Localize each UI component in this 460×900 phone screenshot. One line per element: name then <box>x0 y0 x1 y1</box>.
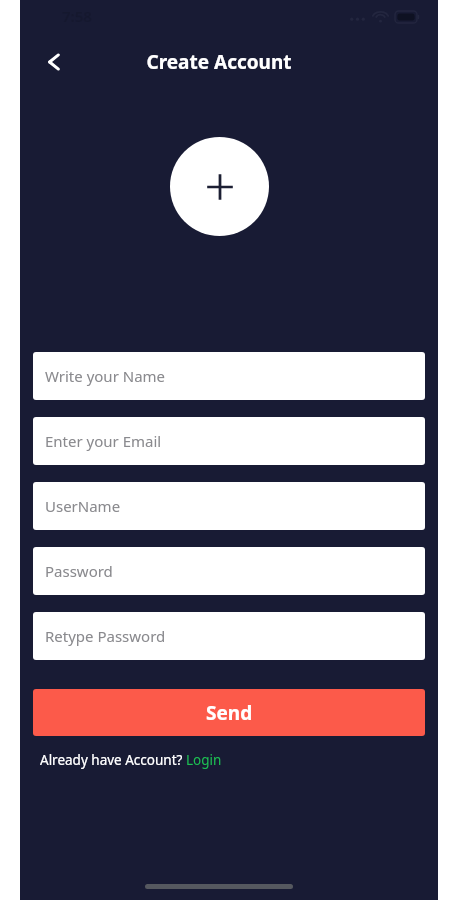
staticText: Password <box>45 561 113 581</box>
staticText: Login <box>186 751 222 769</box>
button[interactable]: Send <box>33 689 425 736</box>
button[interactable]: Password <box>33 547 425 595</box>
button[interactable]: Login <box>186 751 222 769</box>
staticText: Send <box>206 700 253 726</box>
staticText: Already have Account? <box>40 751 186 769</box>
staticText: Write your Name <box>45 366 166 386</box>
button[interactable]: Back <box>32 40 76 84</box>
staticText: UserName <box>45 496 121 516</box>
button[interactable]: Enter your Email <box>33 417 425 465</box>
button[interactable]: Add profile photo <box>170 137 269 236</box>
button[interactable]: Write your Name <box>33 352 425 400</box>
button[interactable]: UserName <box>33 482 425 530</box>
staticText: Create Account <box>146 49 292 75</box>
button[interactable]: Retype Password <box>33 612 425 660</box>
staticText: Enter your Email <box>45 431 162 451</box>
staticText: Retype Password <box>45 626 166 646</box>
